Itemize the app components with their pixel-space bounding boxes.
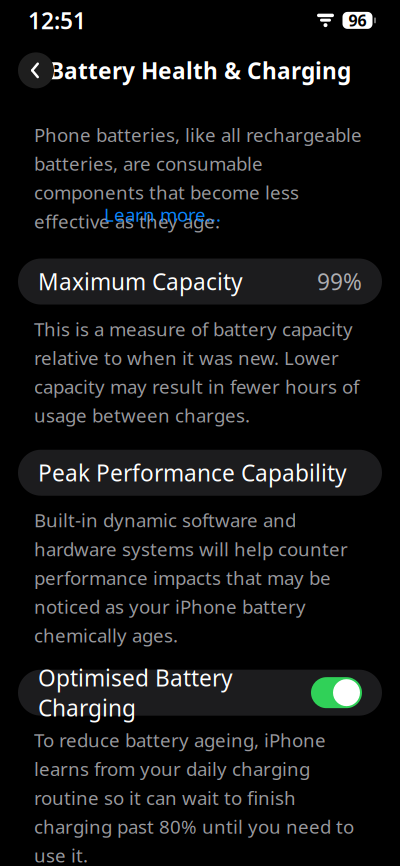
staticText: Optimised Battery Charging <box>38 663 233 723</box>
staticText: Battery Health & Charging <box>49 55 351 85</box>
staticText: 99% <box>317 266 362 297</box>
staticText: Phone batteries, like all rechargeable b… <box>34 122 362 234</box>
staticText: Maximum Capacity <box>38 266 243 297</box>
button[interactable]: Maximum Capacity <box>18 258 382 304</box>
button[interactable]: Peak Performance Capability <box>18 450 382 496</box>
staticText: 12:51 <box>28 5 86 35</box>
button[interactable]: Back <box>18 52 54 88</box>
button[interactable]: Optimised Battery Charging <box>18 670 382 716</box>
staticText: To reduce battery ageing, iPhone learns … <box>34 728 354 866</box>
staticText: 96 <box>348 10 366 31</box>
staticText: Built-in dynamic software and hardware s… <box>34 508 348 648</box>
button[interactable]: Optimised Battery Charging <box>311 677 362 708</box>
staticText: Peak Performance Capability <box>38 458 347 488</box>
staticText: Learn more... <box>104 202 221 227</box>
staticText: This is a measure of battery capacity re… <box>34 316 359 428</box>
